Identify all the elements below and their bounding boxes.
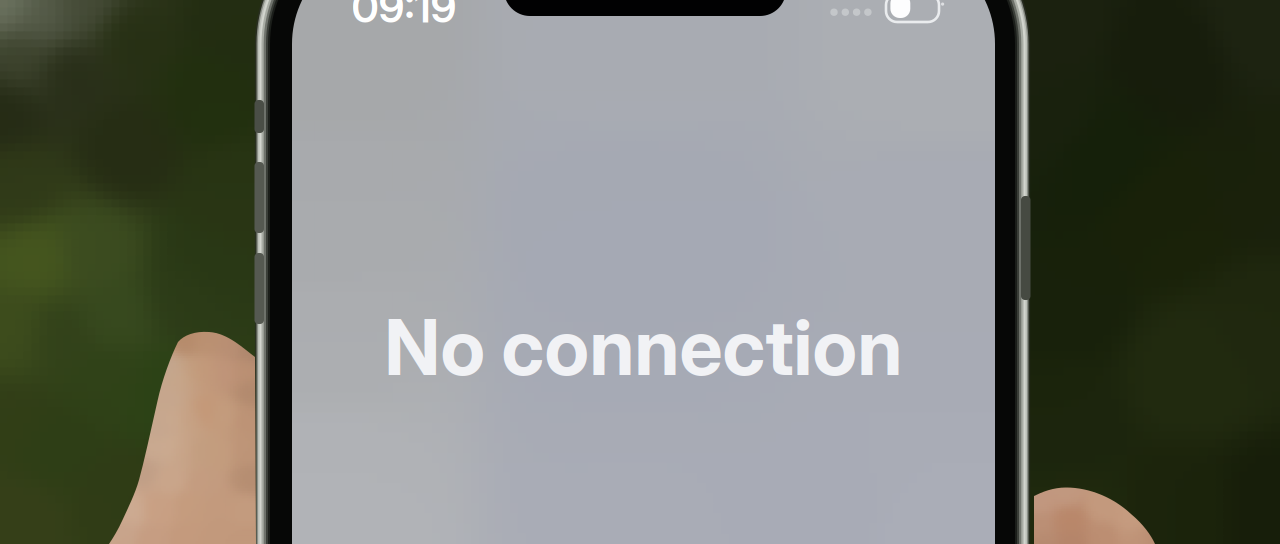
staticText: 09:19 <box>351 0 456 33</box>
staticText: No connection <box>384 301 902 393</box>
